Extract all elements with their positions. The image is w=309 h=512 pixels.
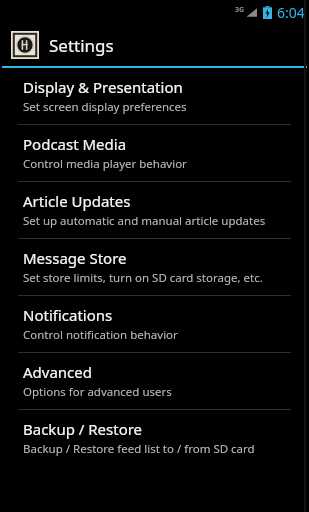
staticText: Backup / Restore feed list to / from SD … bbox=[23, 441, 255, 457]
staticText: Article Updates bbox=[23, 191, 131, 211]
staticText: 3G bbox=[235, 5, 245, 15]
staticText: Advanced bbox=[23, 362, 93, 382]
staticText: Settings bbox=[49, 34, 114, 57]
staticText: 6:04 bbox=[277, 3, 305, 22]
other: App icon bbox=[11, 31, 39, 59]
button[interactable]: Advanced bbox=[0, 353, 309, 409]
staticText: Backup / Restore bbox=[23, 419, 143, 439]
staticText: Options for advanced users bbox=[23, 384, 172, 400]
button[interactable]: App icon bbox=[0, 24, 309, 66]
staticText: Message Store bbox=[23, 248, 127, 268]
button[interactable]: Backup / Restore bbox=[0, 410, 309, 466]
staticText: Display & Presentation bbox=[23, 77, 183, 97]
button[interactable]: Podcast Media bbox=[0, 125, 309, 181]
staticText: Set up automatic and manual article upda… bbox=[23, 213, 266, 229]
button[interactable]: Notifications bbox=[0, 296, 309, 352]
staticText: Set store limits, turn on SD card storag… bbox=[23, 270, 263, 286]
button[interactable]: Message Store bbox=[0, 239, 309, 295]
staticText: Notifications bbox=[23, 305, 113, 325]
button[interactable]: Display & Presentation bbox=[0, 68, 309, 124]
staticText: Podcast Media bbox=[23, 134, 127, 154]
staticText: Control notification behavior bbox=[23, 327, 178, 343]
staticText: Control media player behavior bbox=[23, 156, 187, 172]
button[interactable]: Article Updates bbox=[0, 182, 309, 238]
staticText: Set screen display preferences bbox=[23, 99, 187, 115]
